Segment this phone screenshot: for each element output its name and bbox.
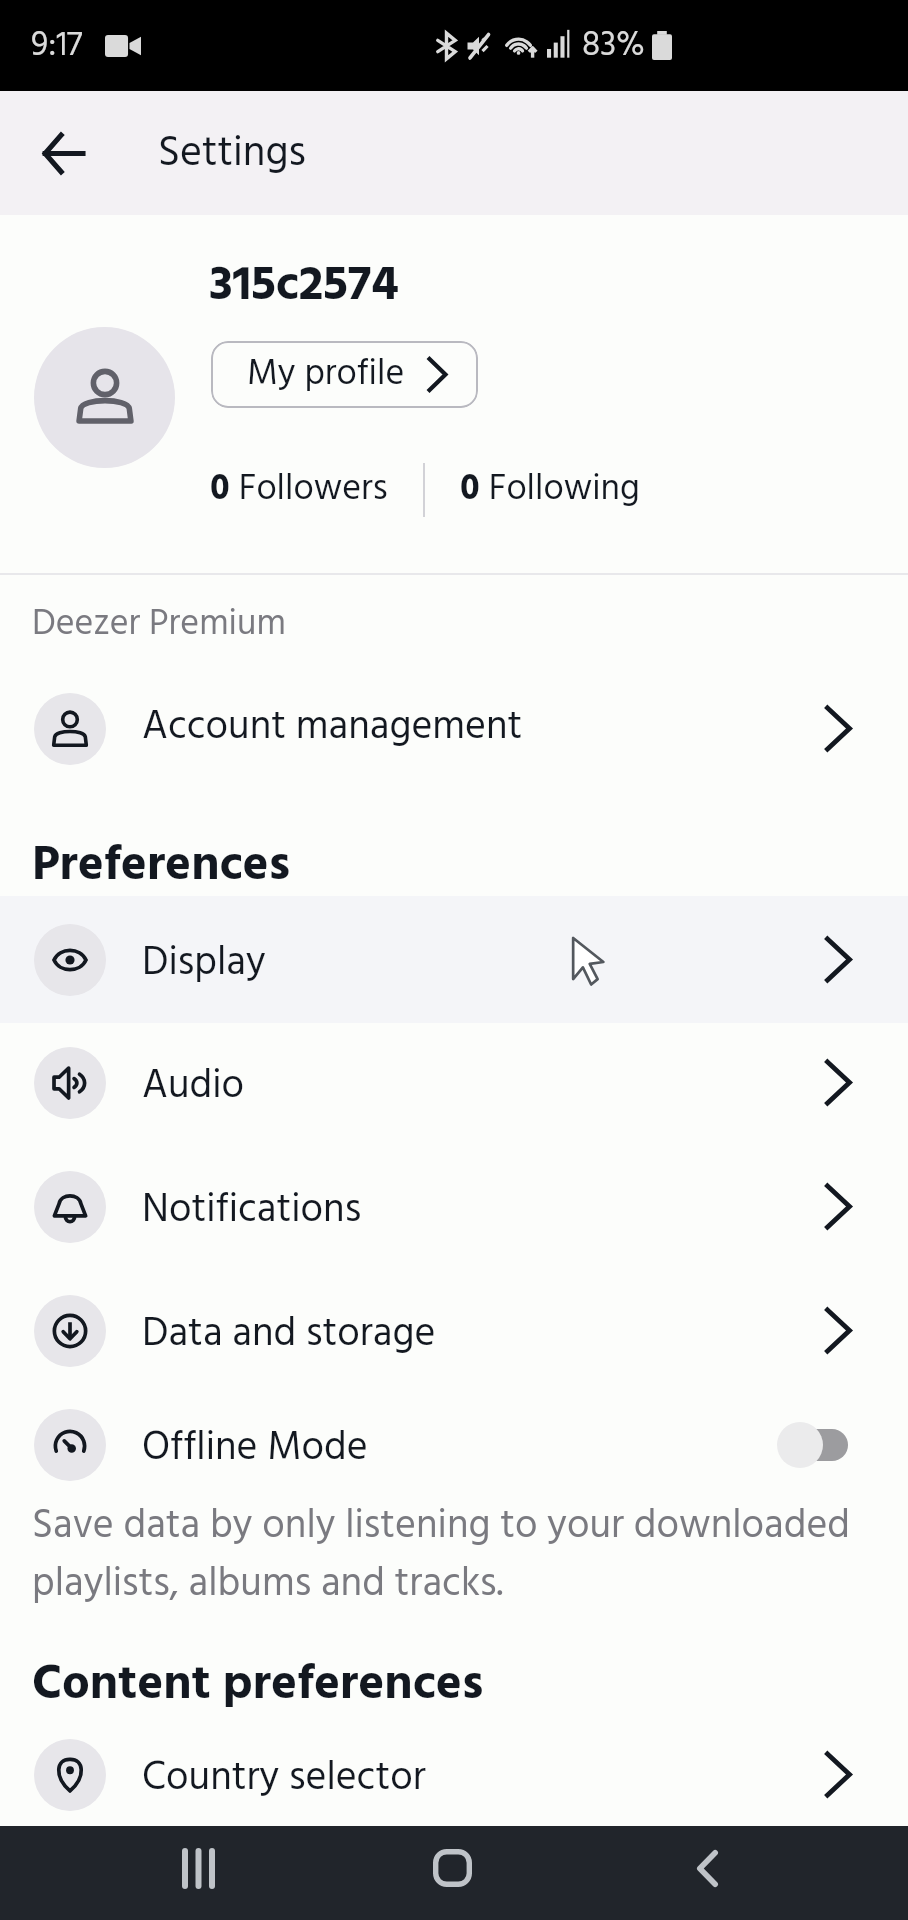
button[interactable]: Country selector xyxy=(0,1711,908,1838)
button[interactable]: Account management xyxy=(0,665,908,792)
staticText: Country selector xyxy=(142,1744,824,1804)
button[interactable]: Back xyxy=(651,1821,763,1915)
button[interactable]: My profile xyxy=(211,341,478,408)
staticText: 9:17 xyxy=(31,17,83,68)
staticText: Settings xyxy=(158,118,306,181)
staticText: Content preferences xyxy=(32,1643,484,1716)
button[interactable]: 0 xyxy=(210,463,388,517)
button[interactable]: Back xyxy=(16,107,108,199)
staticText: My profile xyxy=(247,343,405,397)
button[interactable]: Offline Mode xyxy=(0,1381,908,1508)
staticText: Data and storage xyxy=(142,1300,824,1360)
staticText: Account management xyxy=(142,693,824,753)
staticText: 315c2574 xyxy=(209,244,399,317)
staticText: Offline Mode xyxy=(142,1414,782,1474)
button[interactable]: Recents xyxy=(142,1821,254,1915)
staticText: Notifications xyxy=(142,1176,824,1236)
staticText: 83% xyxy=(582,17,645,68)
staticText: Followers xyxy=(230,458,388,512)
button[interactable]: Display xyxy=(0,896,908,1023)
button[interactable]: Data and storage xyxy=(0,1267,908,1394)
staticText: 0 xyxy=(210,458,230,512)
staticText: Save data by only listening to your down… xyxy=(32,1492,892,1609)
button[interactable]: Home xyxy=(396,1821,508,1915)
staticText: Preferences xyxy=(32,824,291,897)
staticText: 0 xyxy=(460,458,480,512)
button[interactable]: Notifications xyxy=(0,1143,908,1270)
button[interactable]: Audio xyxy=(0,1019,908,1146)
staticText: Audio xyxy=(142,1052,824,1112)
staticText: Display xyxy=(142,929,824,989)
button[interactable]: 0 xyxy=(460,463,640,517)
staticText: Deezer Premium xyxy=(32,593,286,647)
staticText: Following xyxy=(480,458,640,512)
